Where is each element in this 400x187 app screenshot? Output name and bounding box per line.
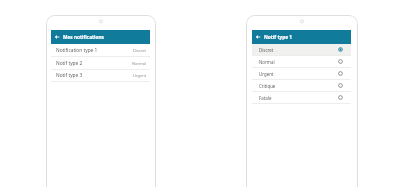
button[interactable]: Discret bbox=[252, 44, 351, 56]
staticText: Normal bbox=[259, 59, 275, 65]
button[interactable]: Critique bbox=[252, 80, 351, 92]
button[interactable]: Notification type 1 bbox=[51, 44, 150, 57]
staticText: Notif type 3 bbox=[56, 72, 83, 79]
button[interactable]: Notif type 2 bbox=[51, 57, 150, 70]
staticText: Urgent bbox=[133, 73, 147, 78]
staticText: Discret bbox=[133, 48, 147, 53]
staticText: Urgent bbox=[259, 71, 274, 77]
button[interactable]: Notif type 3 bbox=[51, 70, 150, 82]
staticText: Discret bbox=[259, 47, 274, 53]
staticText: Mes notifications bbox=[63, 34, 104, 40]
staticText: Fatale bbox=[259, 95, 272, 101]
staticText: Critique bbox=[259, 83, 276, 89]
button[interactable]: Back bbox=[53, 30, 60, 44]
staticText: Notif type 2 bbox=[56, 60, 83, 67]
staticText: Notification type 1 bbox=[56, 47, 98, 54]
button[interactable]: Urgent bbox=[252, 68, 351, 80]
staticText: Notif type 1 bbox=[264, 34, 292, 40]
staticText: Normal bbox=[132, 61, 147, 66]
button[interactable]: Back bbox=[254, 30, 261, 44]
button[interactable]: Normal bbox=[252, 56, 351, 68]
button[interactable]: Fatale bbox=[252, 92, 351, 104]
